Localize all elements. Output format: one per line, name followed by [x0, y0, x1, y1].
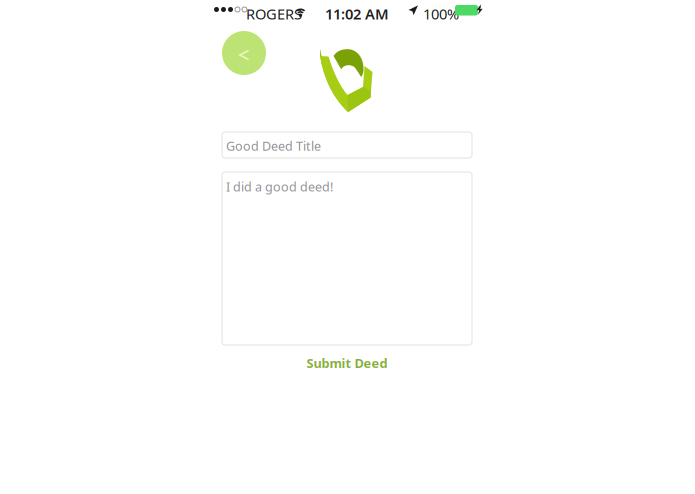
staticText: 11:02 AM	[325, 4, 389, 23]
button[interactable]: Back	[222, 31, 266, 75]
staticText: ROGERS	[246, 4, 302, 23]
staticText: Submit Deed	[306, 354, 387, 372]
staticText: 100%	[423, 4, 459, 23]
staticText: Good Deed Title	[226, 137, 321, 155]
button[interactable]: Submit Deed	[222, 350, 472, 376]
staticText: I did a good deed!	[226, 178, 333, 195]
